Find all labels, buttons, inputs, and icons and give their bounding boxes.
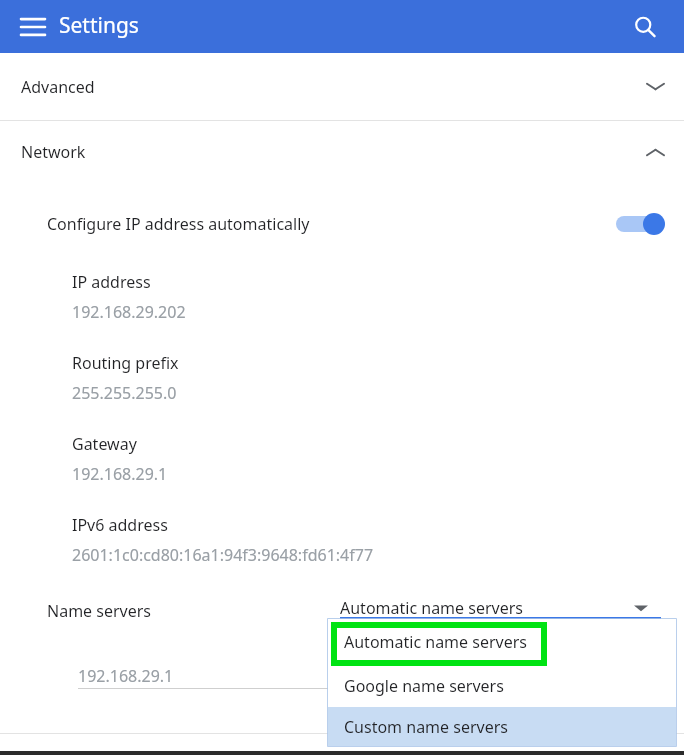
button[interactable]: Network — [0, 121, 684, 183]
button[interactable]: Open navigation menu — [9, 3, 57, 51]
staticText: 192.168.29.1 — [72, 463, 168, 485]
button[interactable]: Google name servers — [328, 664, 676, 707]
button[interactable]: Automatic name servers — [340, 596, 661, 620]
staticText: Custom name servers — [344, 716, 508, 738]
button[interactable]: Configure IP address automatically — [0, 200, 684, 248]
staticText: Routing prefix — [72, 352, 179, 374]
button[interactable]: Custom name servers — [328, 707, 676, 746]
staticText: IP address — [72, 271, 151, 293]
button[interactable]: Configure IP address automatically — [608, 208, 664, 240]
staticText: Settings — [59, 11, 139, 40]
staticText: Automatic name servers — [340, 597, 523, 619]
button[interactable]: Advanced — [0, 53, 684, 120]
staticText: Automatic name servers — [344, 631, 527, 653]
staticText: Gateway — [72, 433, 137, 455]
staticText: Advanced — [21, 76, 95, 98]
staticText: 2601:1c0:cd80:16a1:94f3:9648:fd61:4f77 — [72, 544, 374, 566]
staticText: Name servers — [47, 600, 152, 622]
staticText: 255.255.255.0 — [72, 382, 177, 404]
staticText: IPv6 address — [72, 514, 168, 536]
button[interactable]: Search — [623, 5, 667, 49]
staticText: 192.168.29.202 — [72, 301, 186, 323]
staticText: Network — [21, 141, 86, 163]
staticText: Configure IP address automatically — [47, 213, 310, 235]
staticText: Google name servers — [344, 675, 504, 697]
staticText: 192.168.29.1 — [78, 665, 174, 687]
button[interactable]: Automatic name servers — [328, 619, 676, 664]
